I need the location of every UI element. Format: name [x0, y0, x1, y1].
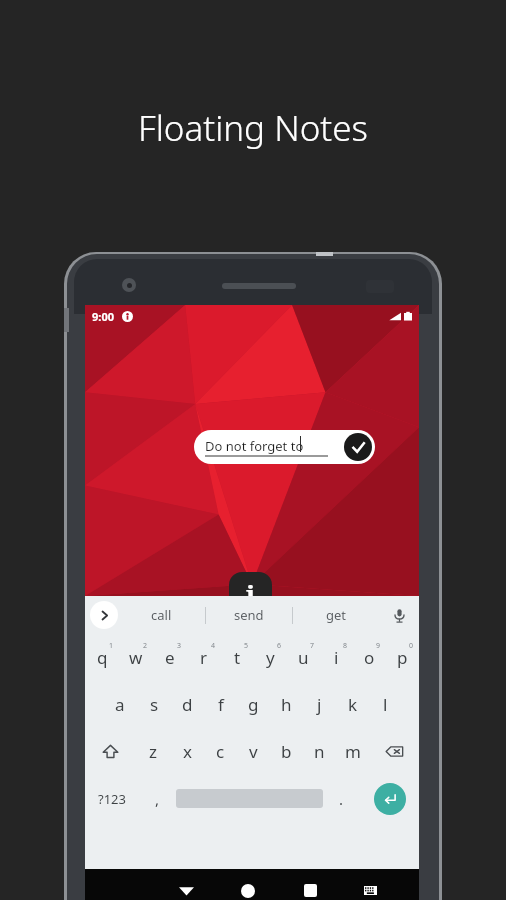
- button[interactable]: g: [237, 681, 270, 728]
- staticText: 5: [244, 641, 249, 651]
- staticText: 2: [143, 641, 148, 651]
- staticText: 6: [277, 641, 282, 651]
- staticText: 4: [211, 641, 216, 651]
- staticText: b: [281, 740, 292, 763]
- button[interactable]: f: [204, 681, 237, 728]
- staticText: m: [345, 740, 361, 763]
- staticText: call: [151, 606, 172, 624]
- button[interactable]: p: [386, 634, 419, 681]
- staticText: u: [298, 646, 309, 669]
- staticText: h: [281, 693, 292, 716]
- button[interactable]: Do not forget to: [194, 430, 375, 464]
- button[interactable]: Shift: [85, 728, 136, 775]
- staticText: 0: [409, 641, 414, 651]
- staticText: a: [115, 693, 125, 716]
- button[interactable]: Switch keyboard: [341, 869, 400, 900]
- button[interactable]: k: [336, 681, 369, 728]
- staticText: 1: [109, 641, 114, 651]
- button[interactable]: h: [270, 681, 303, 728]
- staticText: k: [348, 693, 358, 716]
- button[interactable]: Home: [217, 869, 279, 900]
- staticText: 9:00: [92, 309, 114, 324]
- staticText: Do not forget to: [205, 437, 304, 455]
- button[interactable]: r: [187, 634, 221, 681]
- button[interactable]: e: [153, 634, 187, 681]
- staticText: c: [216, 740, 225, 763]
- button[interactable]: Hide keyboard: [155, 869, 217, 900]
- staticText: 9: [376, 641, 381, 651]
- button[interactable]: Voice input: [379, 596, 419, 634]
- staticText: s: [150, 693, 159, 716]
- staticText: 3: [177, 641, 182, 651]
- button[interactable]: i: [320, 634, 353, 681]
- staticText: y: [266, 646, 275, 669]
- staticText: o: [364, 646, 375, 669]
- button[interactable]: d: [171, 681, 204, 728]
- button[interactable]: ?123: [85, 775, 139, 822]
- staticText: f: [218, 693, 224, 716]
- staticText: i: [334, 646, 339, 669]
- button[interactable]: q: [85, 634, 119, 681]
- staticText: r: [200, 646, 208, 669]
- button[interactable]: Save note: [344, 433, 372, 461]
- button[interactable]: .: [323, 775, 360, 822]
- staticText: send: [234, 606, 264, 624]
- button[interactable]: ,: [139, 775, 176, 822]
- staticText: j: [246, 576, 255, 611]
- staticText: .: [339, 789, 344, 809]
- staticText: v: [249, 740, 258, 763]
- button[interactable]: v: [237, 728, 270, 775]
- button[interactable]: n: [303, 728, 336, 775]
- staticText: get: [326, 606, 347, 624]
- button[interactable]: get: [293, 596, 379, 634]
- button[interactable]: m: [336, 728, 369, 775]
- button[interactable]: j: [303, 681, 336, 728]
- button[interactable]: z: [136, 728, 170, 775]
- staticText: t: [234, 646, 241, 669]
- staticText: w: [129, 646, 143, 669]
- button[interactable]: Recents: [279, 869, 341, 900]
- button[interactable]: u: [287, 634, 320, 681]
- staticText: p: [397, 646, 408, 669]
- button[interactable]: c: [204, 728, 237, 775]
- button[interactable]: Enter: [374, 783, 406, 815]
- button[interactable]: Backspace: [369, 728, 419, 775]
- staticText: 8: [343, 641, 348, 651]
- button[interactable]: t: [221, 634, 254, 681]
- staticText: l: [383, 693, 388, 716]
- button[interactable]: Floating Notes bubble: [229, 572, 272, 615]
- staticText: q: [97, 646, 108, 669]
- staticText: 7: [310, 641, 315, 651]
- staticText: x: [183, 740, 192, 763]
- button[interactable]: b: [270, 728, 303, 775]
- button[interactable]: a: [103, 681, 137, 728]
- staticText: n: [314, 740, 325, 763]
- button[interactable]: More suggestions: [90, 601, 118, 629]
- button[interactable]: o: [353, 634, 386, 681]
- button[interactable]: call: [118, 596, 205, 634]
- staticText: Floating Notes: [138, 104, 368, 152]
- staticText: ,: [155, 789, 160, 809]
- button[interactable]: y: [254, 634, 287, 681]
- staticText: g: [248, 693, 259, 716]
- staticText: j: [317, 693, 322, 716]
- button[interactable]: s: [137, 681, 171, 728]
- button[interactable]: x: [170, 728, 204, 775]
- button[interactable]: l: [369, 681, 402, 728]
- staticText: z: [149, 740, 157, 763]
- staticText: e: [165, 646, 175, 669]
- button[interactable]: w: [119, 634, 153, 681]
- button[interactable]: send: [206, 596, 292, 634]
- staticText: ?123: [98, 790, 126, 808]
- staticText: d: [182, 693, 193, 716]
